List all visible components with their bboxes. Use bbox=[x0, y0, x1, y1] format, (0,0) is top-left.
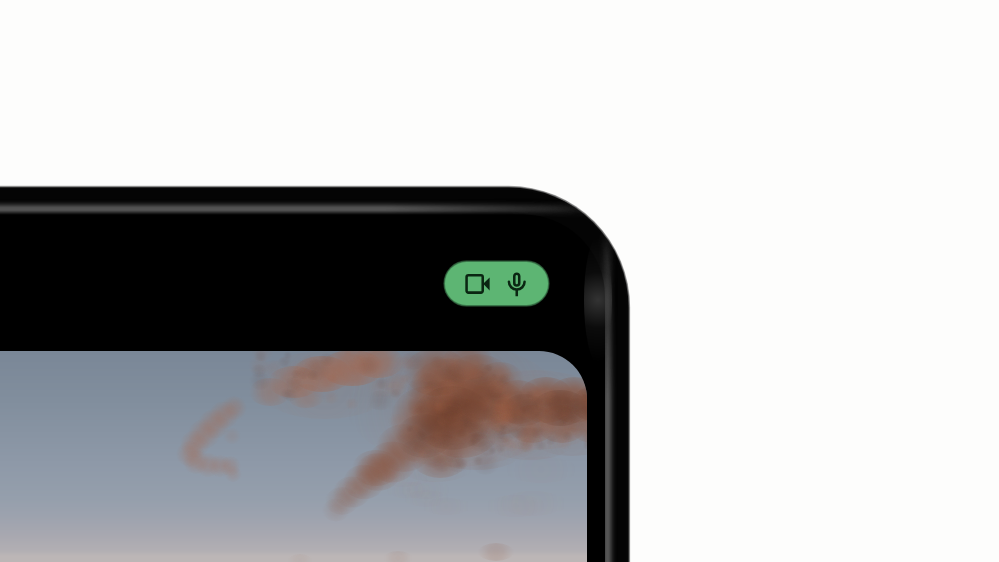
button[interactable]: Camera and microphone in use bbox=[445, 262, 548, 305]
